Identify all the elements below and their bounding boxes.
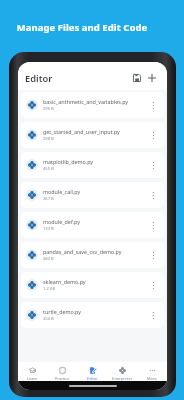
- staticText: Manage Files and Edit Code: [0, 21, 164, 34]
- button[interactable]: Interpreter: [107, 362, 137, 381]
- button[interactable]: More options: [147, 219, 159, 231]
- staticText: pandas_and_save_csv_demo.py: [43, 248, 122, 255]
- staticText: module_call.py: [43, 188, 81, 195]
- staticText: More: [147, 376, 157, 381]
- button[interactable]: Practice: [47, 362, 77, 381]
- staticText: Learn: [27, 376, 38, 381]
- staticText: 295 B: [43, 106, 54, 112]
- staticText: turtle_demo.py: [43, 308, 81, 315]
- button[interactable]: New file: [145, 71, 158, 84]
- staticText: sklearn_demo.py: [43, 278, 86, 285]
- button[interactable]: module_def.py: [21, 212, 164, 238]
- button[interactable]: More options: [147, 129, 159, 141]
- staticText: 1.2 KB: [43, 286, 56, 292]
- button[interactable]: module_call.py: [21, 182, 164, 208]
- button[interactable]: More options: [147, 279, 159, 291]
- button[interactable]: More: [137, 362, 167, 381]
- button[interactable]: sklearn_demo.py: [21, 272, 164, 298]
- button[interactable]: pandas_and_save_csv_demo.py: [21, 242, 164, 268]
- staticText: 304 B: [43, 316, 54, 322]
- staticText: 482 B: [43, 256, 54, 262]
- button[interactable]: Save file: [130, 71, 143, 84]
- staticText: 267 B: [43, 196, 54, 202]
- staticText: basic_arithmetic_and_variables.py: [43, 98, 129, 105]
- staticText: module_def.py: [43, 218, 80, 225]
- staticText: Interpreter: [112, 376, 133, 381]
- staticText: 455 B: [43, 166, 54, 172]
- button[interactable]: More options: [147, 99, 159, 111]
- button[interactable]: matplotlib_demo.py: [21, 152, 164, 178]
- button[interactable]: basic_arithmetic_and_variables.py: [21, 92, 164, 118]
- button[interactable]: More options: [147, 249, 159, 261]
- button[interactable]: More options: [147, 189, 159, 201]
- button[interactable]: Editor: [77, 362, 107, 381]
- staticText: Editor: [25, 72, 53, 85]
- staticText: Editor: [87, 376, 98, 381]
- button[interactable]: turtle_demo.py: [21, 302, 164, 328]
- staticText: get_started_and_user_input.py: [43, 128, 120, 135]
- button[interactable]: More options: [147, 159, 159, 171]
- button[interactable]: More options: [147, 309, 159, 321]
- staticText: 298 B: [43, 136, 54, 142]
- button[interactable]: Learn: [18, 362, 47, 381]
- staticText: 133 B: [43, 226, 54, 232]
- button[interactable]: get_started_and_user_input.py: [21, 122, 164, 148]
- staticText: Practice: [55, 376, 70, 381]
- staticText: matplotlib_demo.py: [43, 158, 94, 165]
